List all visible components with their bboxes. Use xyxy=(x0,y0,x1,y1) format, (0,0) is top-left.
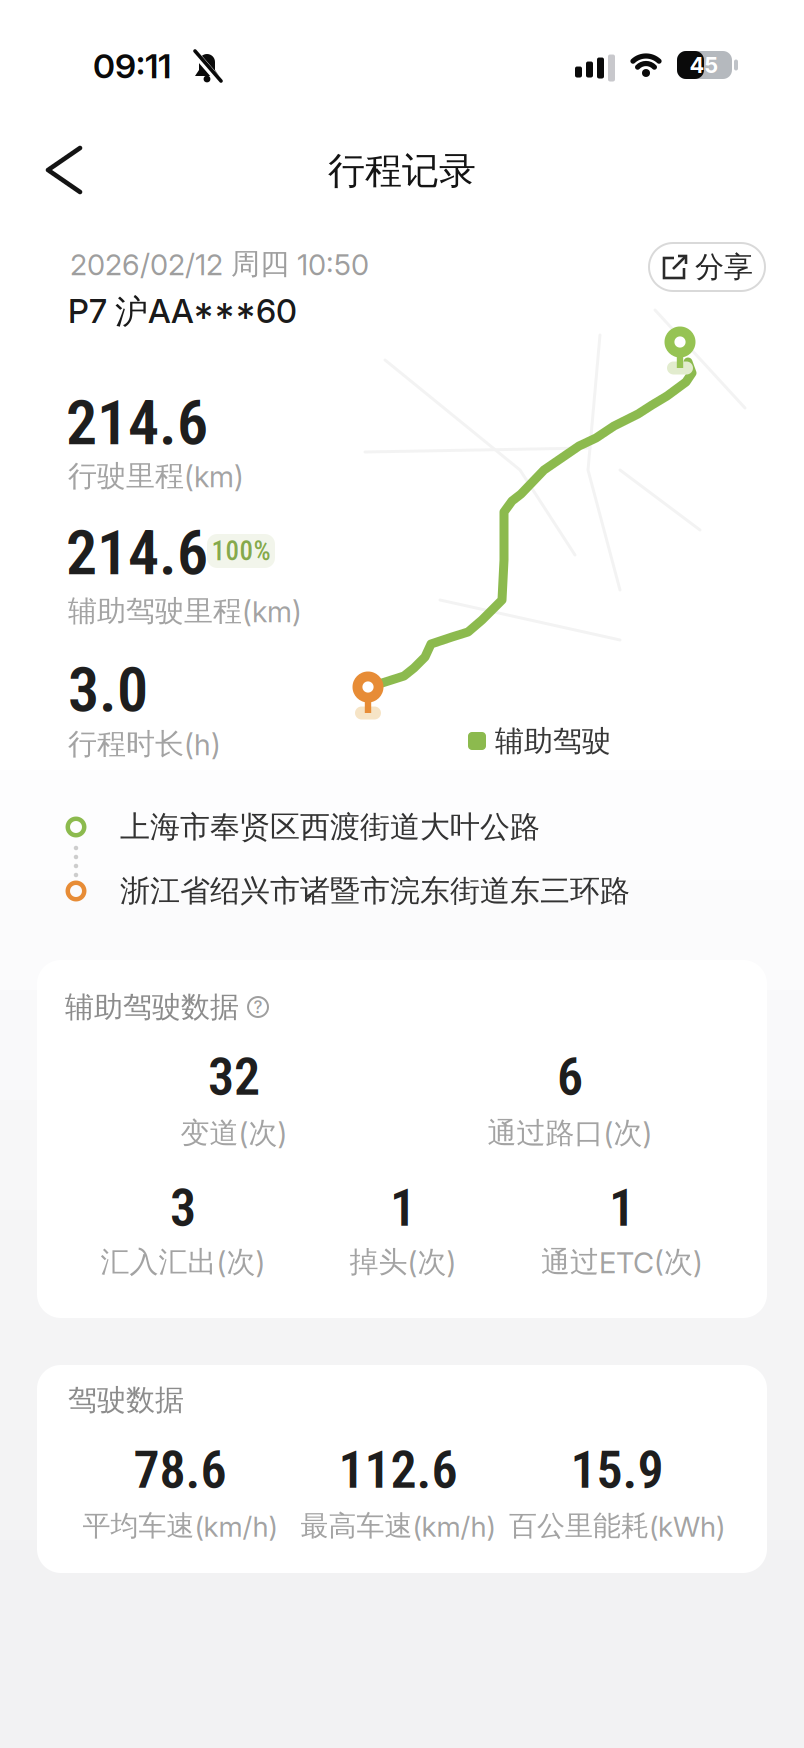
staticText: 214.6 xyxy=(66,387,208,459)
staticText: 3 xyxy=(170,1177,196,1238)
staticText: 100% xyxy=(211,535,270,567)
staticText: 平均车速(km/h) xyxy=(82,1508,277,1544)
staticText: 辅助驾驶 xyxy=(495,723,611,759)
staticText: 行程时长(h) xyxy=(68,726,221,762)
staticText: 浙江省绍兴市诸暨市浣东街道东三环路 xyxy=(120,872,630,910)
staticText: 09:11 xyxy=(93,45,171,86)
staticText: 112.6 xyxy=(338,1439,457,1500)
staticText: 通过路口(次) xyxy=(487,1115,652,1151)
staticText: 上海市奉贤区西渡街道大叶公路 xyxy=(120,808,540,846)
staticText: 行驶里程(km) xyxy=(68,458,244,494)
staticText: 辅助驾驶数据 xyxy=(65,989,239,1025)
staticText: 1 xyxy=(609,1177,635,1238)
staticText: 百公里能耗(kWh) xyxy=(509,1508,725,1544)
staticText: 辅助驾驶里程(km) xyxy=(68,593,302,629)
button[interactable] xyxy=(34,140,94,200)
staticText: 变道(次) xyxy=(180,1115,287,1151)
staticText: 分享 xyxy=(695,249,753,285)
staticText: 行程记录 xyxy=(328,148,476,194)
staticText: 1 xyxy=(390,1177,416,1238)
staticText: 15.9 xyxy=(570,1439,663,1500)
staticText: 通过ETC(次) xyxy=(541,1244,703,1280)
staticText: 214.6 xyxy=(66,517,208,589)
staticText: 掉头(次) xyxy=(349,1244,456,1280)
staticText: 32 xyxy=(208,1046,260,1107)
staticText: 45 xyxy=(689,52,718,78)
staticText: 78.6 xyxy=(133,1439,226,1500)
staticText: 汇入汇出(次) xyxy=(100,1244,265,1280)
staticText: ? xyxy=(253,997,262,1017)
staticText: 3.0 xyxy=(68,654,148,726)
staticText: P7 沪AA***60 xyxy=(68,291,297,333)
staticText: 最高车速(km/h) xyxy=(300,1508,495,1544)
button[interactable]: 分享 xyxy=(648,242,766,292)
staticText: 6 xyxy=(557,1046,583,1107)
staticText: 2026/02/12 周四 10:50 xyxy=(70,246,369,282)
button[interactable]: ? xyxy=(245,994,271,1020)
staticText: 驾驶数据 xyxy=(68,1382,184,1418)
